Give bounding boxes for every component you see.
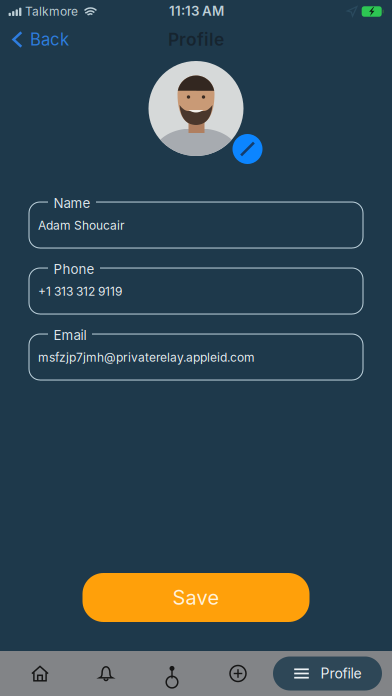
staticText: Back <box>30 29 69 50</box>
staticText: Profile <box>320 665 361 682</box>
button[interactable]: Profile <box>273 656 382 690</box>
staticText: 11:13 AM <box>169 3 224 19</box>
staticText: Phone <box>53 261 94 277</box>
staticText: Name <box>53 195 90 211</box>
button[interactable]: Save <box>82 573 309 622</box>
staticText: Save <box>172 585 219 610</box>
button[interactable]: Home <box>7 651 73 696</box>
staticText: +1 313 312 9119 <box>38 284 122 298</box>
button[interactable]: Change profile photo <box>148 61 243 156</box>
staticText: Email <box>53 327 86 343</box>
button[interactable]: Back <box>0 24 79 55</box>
staticText: Adam Shoucair <box>38 218 125 232</box>
button[interactable]: Notifications <box>73 651 139 696</box>
button[interactable]: Add <box>205 651 271 696</box>
staticText: Profile <box>168 29 224 50</box>
staticText: Talkmore <box>25 4 78 19</box>
button[interactable]: Places <box>139 651 205 696</box>
staticText: msfzjp7jmh@privaterelay.appleid.com <box>38 350 255 364</box>
